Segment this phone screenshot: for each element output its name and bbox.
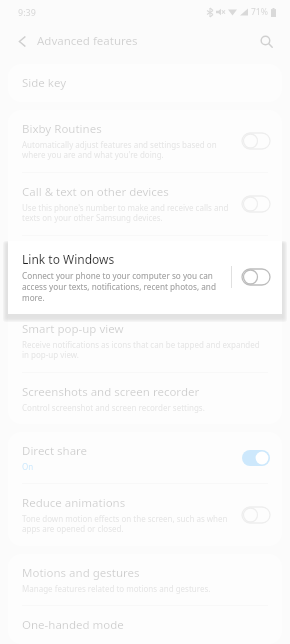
- staticText: Bixby Routines: [22, 121, 102, 137]
- staticText: Advanced features: [37, 33, 138, 49]
- button[interactable]: Toggle on: [242, 450, 270, 466]
- staticText: Control screenshot and screen recorder s…: [22, 402, 205, 413]
- staticText: Screenshots and screen recorder: [22, 384, 200, 400]
- button[interactable]: Motions and gestures: [8, 554, 282, 606]
- staticText: Side key: [22, 75, 67, 91]
- staticText: 9:39: [18, 6, 36, 18]
- button[interactable]: Bixby Routines: [8, 110, 282, 173]
- button[interactable]: Reduce animations: [8, 484, 282, 546]
- staticText: Link to Windows: [22, 247, 111, 263]
- button[interactable]: Search: [252, 27, 280, 55]
- staticText: Receive notifications as icons that can …: [22, 339, 262, 361]
- button[interactable]: Direct share: [8, 432, 282, 484]
- staticText: Reduce animations: [22, 495, 126, 511]
- button[interactable]: Side key: [8, 64, 282, 102]
- staticText: Connect your phone to your computer so y…: [22, 265, 234, 298]
- staticText: Manage features related to motions and g…: [22, 583, 211, 594]
- staticText: 71%: [251, 6, 268, 18]
- button[interactable]: Link to Windows: [8, 241, 282, 314]
- staticText: Motions and gestures: [22, 565, 140, 581]
- staticText: Smart pop-up view: [22, 321, 124, 337]
- staticText: Call & text on other devices: [22, 184, 169, 200]
- button[interactable]: Toggle off: [242, 269, 270, 285]
- button[interactable]: Call & text on other devices: [8, 173, 282, 236]
- staticText: Use this phone's number to make and rece…: [22, 202, 234, 224]
- button[interactable]: Smart pop-up view: [8, 310, 282, 373]
- staticText: Automatically adjust features and settin…: [22, 139, 234, 161]
- staticText: One-handed mode: [22, 617, 124, 633]
- button[interactable]: Toggle off: [242, 196, 270, 212]
- staticText: Connect your phone to your computer so y…: [22, 270, 223, 303]
- staticText: Direct share: [22, 443, 88, 459]
- staticText: Tone down motion effects on the screen, …: [22, 513, 234, 535]
- staticText: On: [22, 461, 34, 472]
- button[interactable]: Toggle off: [242, 265, 270, 281]
- button[interactable]: One-handed mode: [8, 606, 282, 644]
- button[interactable]: Toggle off: [242, 507, 270, 523]
- button[interactable]: Screenshots and screen recorder: [8, 373, 282, 424]
- button[interactable]: Toggle off: [242, 133, 270, 149]
- staticText: Link to Windows: [22, 251, 115, 267]
- button[interactable]: Link to Windows: [8, 236, 282, 310]
- button[interactable]: Back: [8, 27, 36, 55]
